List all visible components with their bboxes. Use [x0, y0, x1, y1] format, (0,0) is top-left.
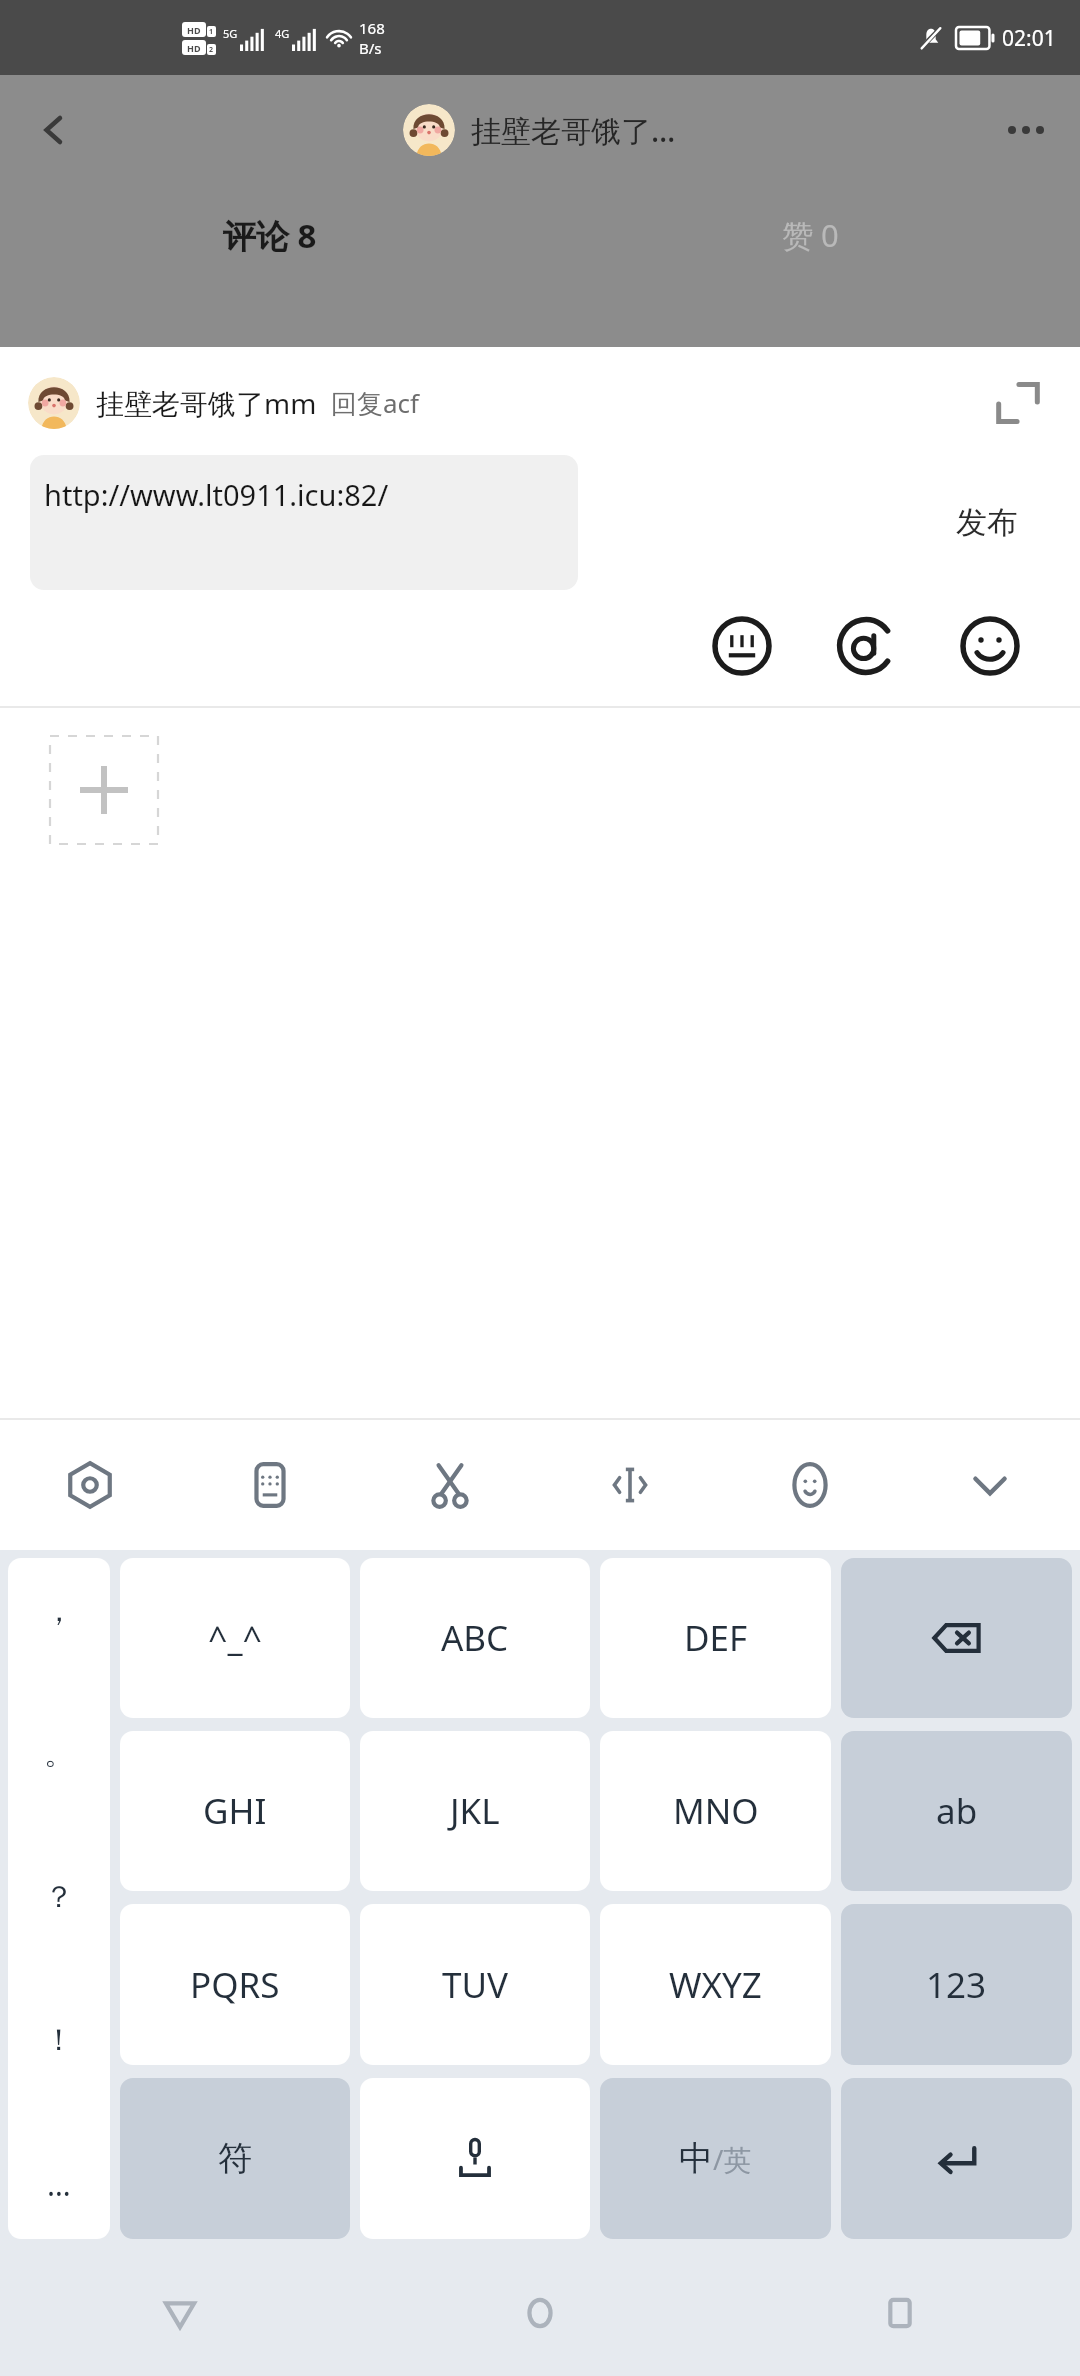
button[interactable]: Enter	[841, 2078, 1072, 2239]
button[interactable]: 符	[120, 2078, 350, 2239]
button[interactable]: More options	[998, 102, 1054, 158]
button[interactable]: 发布	[938, 491, 1036, 554]
button[interactable]: 中/英	[600, 2078, 831, 2239]
staticText: ab	[936, 1787, 978, 1835]
button[interactable]: GHI	[120, 1731, 350, 1891]
button[interactable]: Backspace	[841, 1558, 1072, 1718]
staticText: B/s	[359, 38, 382, 58]
button[interactable]: WXYZ	[600, 1904, 831, 2065]
button[interactable]: Keyboard layout	[180, 1420, 360, 1550]
button[interactable]: Settings	[0, 1420, 180, 1550]
staticText: 4G	[275, 26, 290, 41]
staticText: 中	[679, 2137, 713, 2180]
button[interactable]: Expand	[990, 375, 1046, 431]
button[interactable]: Hide keyboard	[900, 1420, 1080, 1550]
button[interactable]: DEF	[600, 1558, 831, 1718]
button[interactable]: Emoji	[956, 612, 1024, 680]
staticText: ^_^	[208, 1615, 262, 1661]
button[interactable]: http://www.lt0911.icu:82/	[30, 455, 578, 590]
button[interactable]: Punctuation	[8, 1558, 110, 2239]
staticText: 。	[44, 1735, 74, 1773]
button[interactable]: PQRS	[120, 1904, 350, 2065]
button[interactable]: Back	[26, 102, 82, 158]
button[interactable]: JKL	[360, 1731, 590, 1891]
staticText: ！	[44, 2021, 74, 2059]
staticText: WXYZ	[669, 1961, 762, 2009]
staticText: ABC	[441, 1614, 509, 1662]
staticText: 符	[218, 2137, 252, 2180]
staticText: http://www.lt0911.icu:82/	[44, 475, 389, 514]
staticText: GHI	[203, 1787, 267, 1835]
button[interactable]: Clipboard	[360, 1420, 540, 1550]
button[interactable]: Cursor control	[540, 1420, 720, 1550]
staticText: HD	[187, 24, 201, 36]
staticText: 挂壁老哥饿了mm	[96, 384, 317, 422]
staticText: 02:01	[1002, 24, 1056, 53]
button[interactable]: Space	[360, 2078, 590, 2239]
staticText: ？	[44, 1878, 74, 1916]
button[interactable]: Back	[0, 2250, 360, 2376]
staticText: 1	[209, 27, 214, 37]
staticText: HD	[187, 42, 201, 54]
staticText: 5G	[223, 26, 238, 41]
button[interactable]: Recents	[720, 2250, 1080, 2376]
staticText: /英	[713, 2140, 752, 2178]
staticText: 赞 0	[782, 214, 839, 256]
staticText: 168	[359, 18, 385, 38]
staticText: 评论 8	[223, 213, 317, 258]
button[interactable]: 赞 0	[540, 185, 1080, 285]
button[interactable]: Home	[360, 2250, 720, 2376]
staticText: 123	[926, 1961, 987, 2009]
button[interactable]: ABC	[360, 1558, 590, 1718]
staticText: PQRS	[190, 1961, 280, 2009]
button[interactable]: 123	[841, 1904, 1072, 2065]
staticText: 2	[209, 45, 214, 55]
button[interactable]: 评论 8	[0, 185, 540, 285]
staticText: MNO	[673, 1787, 759, 1835]
staticText: 回复acf	[331, 385, 420, 421]
button[interactable]: 挂壁老哥饿了…	[403, 104, 676, 156]
button[interactable]: Mention	[832, 612, 900, 680]
staticText: …	[47, 2164, 71, 2205]
staticText: ，	[44, 1592, 74, 1630]
button[interactable]: MNO	[600, 1731, 831, 1891]
staticText: 发布	[956, 503, 1018, 542]
button[interactable]: ab	[841, 1731, 1072, 1891]
staticText: DEF	[684, 1614, 748, 1662]
button[interactable]: Keyboard	[708, 612, 776, 680]
staticText: 挂壁老哥饿了…	[471, 110, 676, 151]
button[interactable]: Add image	[50, 736, 158, 844]
button[interactable]: ^_^	[120, 1558, 350, 1718]
button[interactable]: Emoji	[720, 1420, 900, 1550]
staticText: JKL	[450, 1787, 500, 1835]
staticText: TUV	[442, 1961, 509, 2009]
button[interactable]: TUV	[360, 1904, 590, 2065]
